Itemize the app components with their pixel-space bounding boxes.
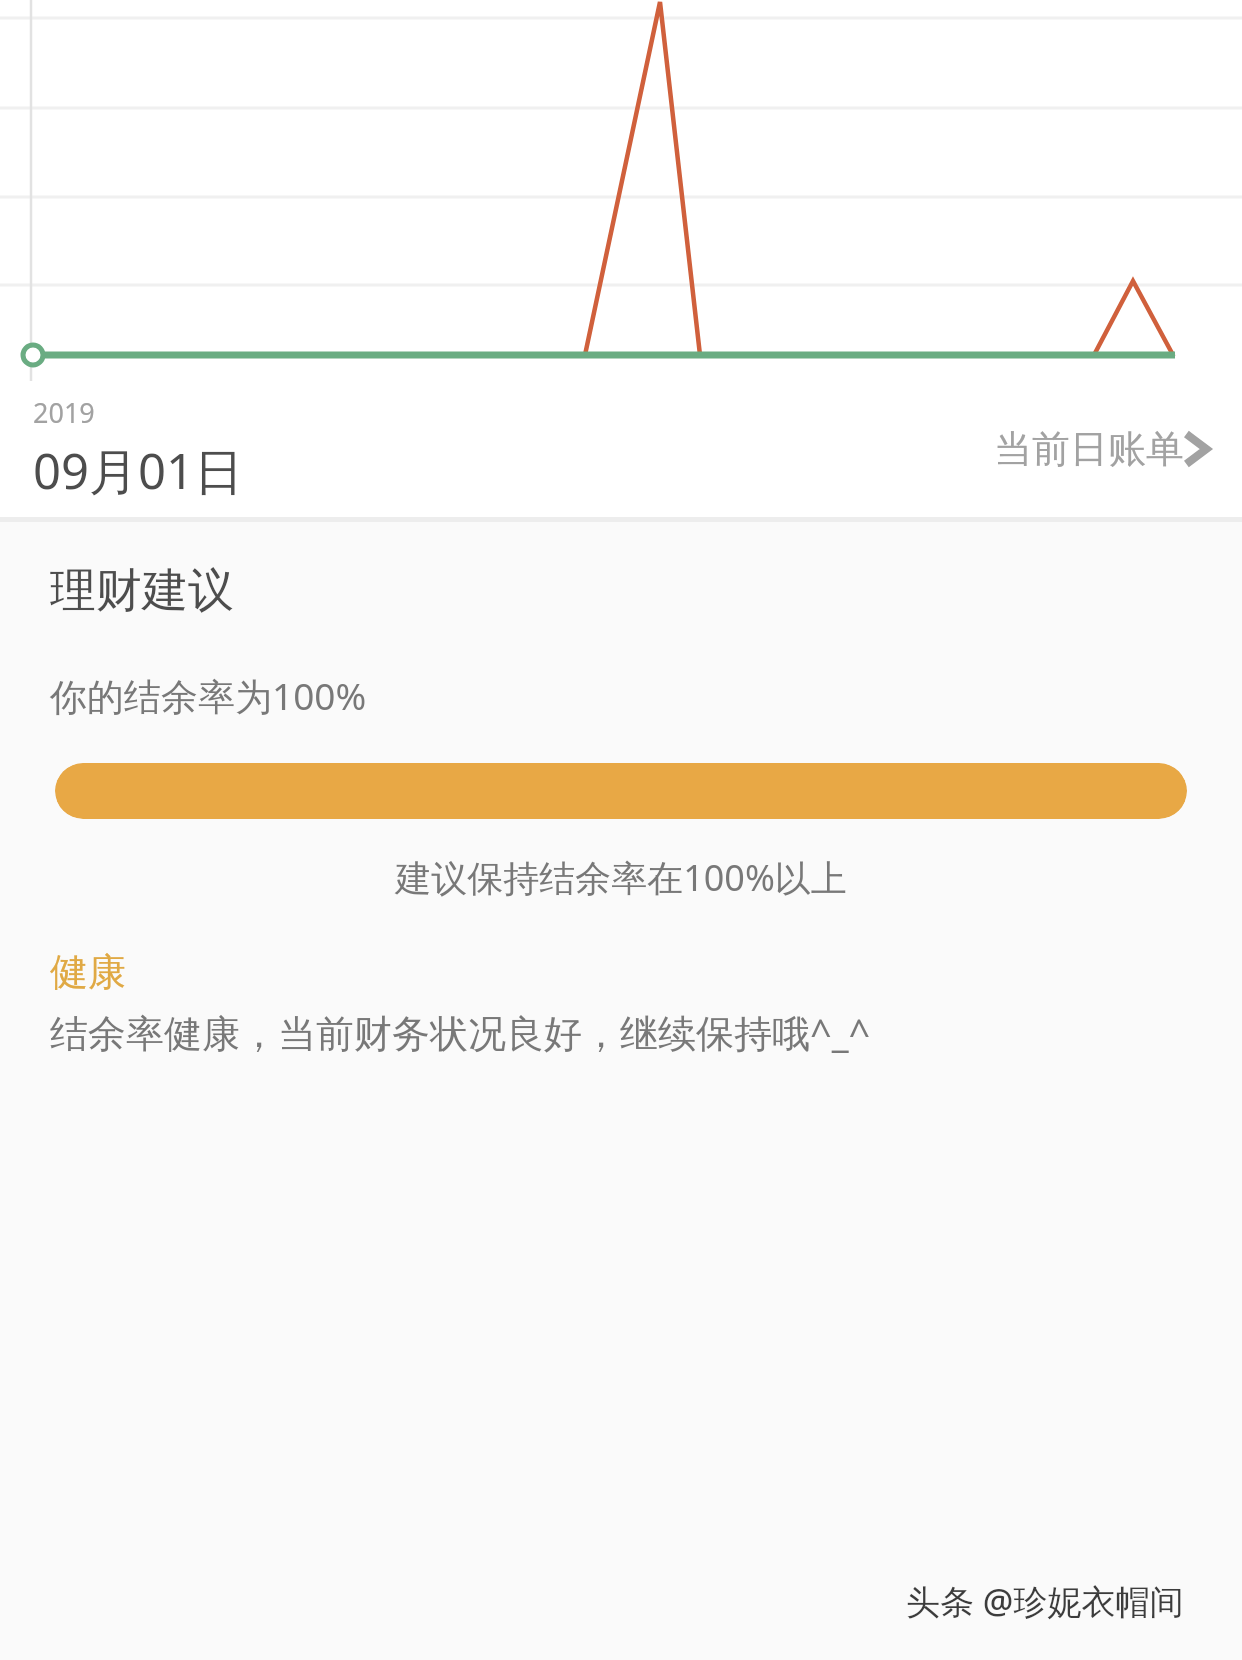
staticText: 当前日账单 (994, 425, 1184, 473)
staticText: 健康 (50, 948, 126, 996)
staticText: 建议保持结余率在100%以上 (0, 853, 1242, 902)
other: 当前日账单 (1186, 428, 1210, 470)
staticText: 你的结余率为100% (50, 670, 367, 721)
staticText: 09月01日 (33, 437, 244, 504)
staticText: 头条 @珍妮衣帽间 (906, 1578, 1184, 1624)
staticText: 理财建议 (50, 562, 234, 620)
button[interactable]: 当前日账单 (990, 413, 1214, 485)
staticText: 2019 (33, 394, 95, 431)
staticText: 结余率健康，当前财务状况良好，继续保持哦^_^ (50, 1006, 871, 1058)
